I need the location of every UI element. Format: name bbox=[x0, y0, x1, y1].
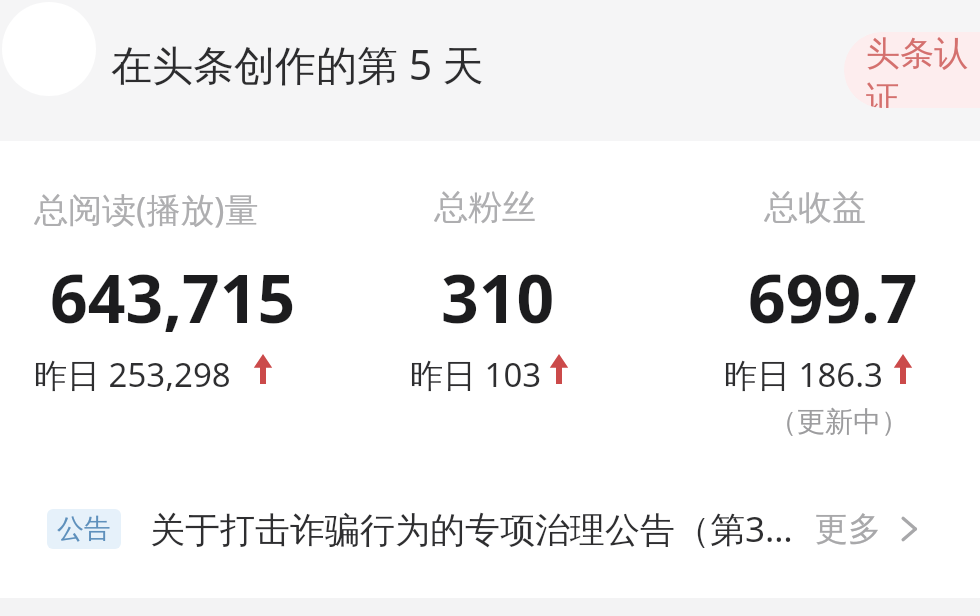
staticText: 总收益 bbox=[764, 186, 866, 229]
staticText: 699.7 bbox=[748, 252, 918, 342]
staticText: 昨日 253,298 bbox=[34, 352, 231, 397]
staticText: 昨日 186.3 bbox=[724, 352, 883, 397]
staticText: 头条认证 bbox=[866, 32, 980, 108]
staticText: 更多 bbox=[815, 508, 881, 550]
staticText: （更新中） bbox=[764, 404, 914, 439]
staticText: 总阅读(播放)量 bbox=[34, 186, 259, 232]
button[interactable]: 头条认证 bbox=[844, 32, 980, 108]
staticText: 643,715 bbox=[50, 252, 296, 342]
staticText: 310 bbox=[441, 252, 555, 342]
staticText: 昨日 103 bbox=[410, 352, 542, 397]
button[interactable]: 公告 bbox=[0, 498, 980, 560]
button[interactable]: Profile avatar bbox=[2, 2, 96, 96]
staticText: 关于打击诈骗行为的专项治理公告（第3… bbox=[150, 505, 793, 553]
other: More announcements bbox=[893, 509, 927, 549]
staticText: 公告 bbox=[57, 512, 111, 546]
button[interactable]: 在头条创作的第 5 天 bbox=[111, 36, 484, 92]
staticText: 总粉丝 bbox=[434, 186, 536, 229]
